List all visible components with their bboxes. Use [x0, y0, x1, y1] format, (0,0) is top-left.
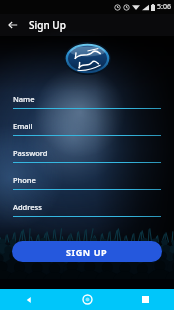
- button[interactable]: Email: [13, 121, 161, 148]
- button[interactable]: Address: [13, 202, 161, 229]
- staticText: Name: [13, 94, 35, 104]
- button[interactable]: Password: [13, 148, 161, 175]
- staticText: Address: [13, 202, 42, 212]
- button[interactable]: Home: [58, 289, 116, 310]
- staticText: Phone: [13, 175, 36, 185]
- staticText: Sign Up: [29, 18, 66, 32]
- button[interactable]: SIGN UP: [12, 241, 162, 262]
- button[interactable]: Phone: [13, 175, 161, 202]
- staticText: 5:06: [157, 2, 171, 12]
- staticText: Email: [13, 121, 33, 131]
- staticText: Password: [13, 148, 48, 158]
- staticText: SIGN UP: [66, 246, 108, 258]
- button[interactable]: Back: [5, 17, 21, 33]
- button[interactable]: Recent apps: [116, 289, 174, 310]
- button[interactable]: Name: [13, 94, 161, 121]
- button[interactable]: Back: [0, 289, 58, 310]
